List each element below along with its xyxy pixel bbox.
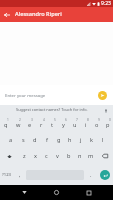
button[interactable]: 0: [102, 116, 113, 132]
staticText: z: [23, 152, 26, 160]
staticText: 6: [65, 118, 67, 122]
button[interactable]: Back: [1, 9, 12, 20]
button[interactable]: f: [41, 132, 53, 148]
staticText: ,: [19, 171, 21, 178]
staticText: a: [9, 136, 13, 144]
staticText: 5: [54, 118, 56, 122]
button[interactable]: 5: [47, 116, 58, 132]
staticText: Alessandro Riperi: [15, 10, 62, 18]
button[interactable]: g: [53, 132, 64, 148]
button[interactable]: 1: [0, 116, 12, 132]
staticText: ?123: [2, 172, 12, 178]
button[interactable]: 3: [24, 116, 36, 132]
button[interactable]: Home: [49, 185, 64, 200]
staticText: i: [85, 121, 87, 129]
staticText: c: [45, 152, 48, 160]
staticText: y: [62, 121, 65, 129]
button[interactable]: z: [18, 148, 30, 164]
staticText: e: [28, 121, 32, 129]
staticText: Suggest contact names? Touch for info.: [16, 107, 88, 112]
button[interactable]: v: [52, 148, 63, 164]
button[interactable]: c: [41, 148, 52, 164]
button[interactable]: ?123: [0, 164, 14, 185]
button[interactable]: Send: [98, 91, 107, 100]
button[interactable]: Back: [17, 185, 32, 200]
button[interactable]: Shift: [0, 148, 18, 164]
staticText: 2: [19, 118, 21, 122]
button[interactable]: h: [64, 132, 75, 148]
staticText: .: [90, 171, 92, 178]
button[interactable]: 8: [80, 116, 91, 132]
staticText: l: [102, 136, 104, 144]
staticText: j: [80, 136, 82, 144]
staticText: s: [22, 136, 25, 144]
button[interactable]: ,: [14, 164, 25, 185]
staticText: x: [34, 152, 37, 160]
staticText: k: [90, 136, 93, 144]
staticText: g: [57, 136, 61, 144]
button[interactable]: d: [29, 132, 41, 148]
staticText: 8: [87, 118, 89, 122]
staticText: 9: [98, 118, 100, 122]
button[interactable]: 7: [69, 116, 80, 132]
staticText: q: [4, 121, 8, 129]
staticText: 7: [76, 118, 78, 122]
staticText: Enter your message: [5, 92, 46, 98]
staticText: 3: [31, 118, 33, 122]
button[interactable]: m: [85, 148, 96, 164]
button[interactable]: 4: [36, 116, 47, 132]
staticText: o: [95, 121, 99, 129]
button[interactable]: Backspace: [96, 148, 113, 164]
button[interactable]: 2: [12, 116, 24, 132]
button[interactable]: k: [86, 132, 97, 148]
staticText: 0: [109, 118, 111, 122]
staticText: 4: [43, 118, 45, 122]
button[interactable]: Enter: [100, 170, 110, 180]
staticText: 1: [7, 118, 9, 122]
button[interactable]: s: [17, 132, 29, 148]
button[interactable]: l: [97, 132, 108, 148]
button[interactable]: x: [30, 148, 41, 164]
staticText: 9:23: [101, 0, 111, 7]
button[interactable]: .: [85, 164, 96, 185]
staticText: b: [67, 152, 71, 160]
button[interactable]: j: [75, 132, 86, 148]
button[interactable]: b: [63, 148, 74, 164]
staticText: f: [46, 136, 48, 144]
staticText: d: [33, 136, 37, 144]
staticText: m: [88, 152, 94, 160]
button[interactable]: a: [5, 132, 17, 148]
staticText: p: [106, 121, 110, 129]
staticText: n: [78, 152, 82, 160]
button[interactable]: Voice input: [102, 107, 109, 114]
staticText: t: [51, 121, 54, 129]
staticText: v: [56, 152, 59, 160]
button[interactable]: n: [74, 148, 85, 164]
button[interactable]: Recents: [81, 185, 96, 200]
button[interactable]: 9: [91, 116, 102, 132]
staticText: r: [40, 121, 43, 129]
staticText: u: [73, 121, 77, 129]
staticText: w: [16, 121, 21, 129]
button[interactable]: 6: [58, 116, 69, 132]
staticText: h: [68, 136, 72, 144]
